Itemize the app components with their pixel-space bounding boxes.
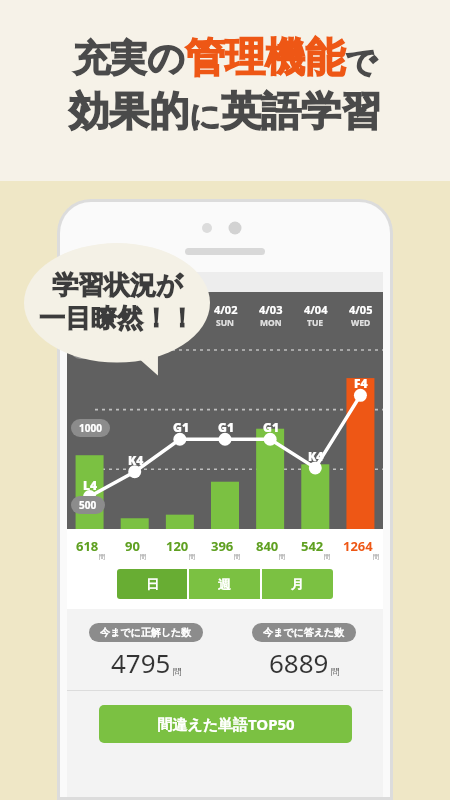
staticText: SUN: [216, 317, 235, 329]
staticText: K4: [128, 452, 144, 468]
staticText: F4: [354, 375, 368, 391]
staticText: 問: [373, 553, 379, 561]
staticText: 問: [331, 666, 340, 677]
staticText: WED: [351, 317, 371, 329]
staticText: 500: [79, 498, 97, 512]
staticText: 396: [211, 537, 234, 555]
staticText: 問: [234, 553, 240, 561]
staticText: 3/30: [78, 302, 102, 317]
staticText: TUE: [307, 317, 324, 329]
staticText: 4/03: [259, 302, 283, 317]
staticText: 充実の: [73, 35, 185, 82]
staticText: 542: [301, 537, 324, 555]
staticText: 一目瞭然！！: [39, 302, 195, 335]
staticText: に: [189, 97, 221, 136]
staticText: 日: [146, 576, 159, 592]
staticText: 問: [324, 553, 330, 561]
staticText: SAT: [173, 317, 188, 329]
button[interactable]: 日: [117, 569, 187, 599]
button[interactable]: 月: [262, 569, 333, 599]
staticText: 効果的: [69, 86, 189, 136]
staticText: G1: [263, 419, 279, 435]
staticText: G1: [173, 419, 189, 435]
staticText: 問: [173, 666, 182, 677]
staticText: 120: [166, 537, 189, 555]
staticText: K4: [308, 448, 324, 464]
staticText: 今までに正解した数: [100, 626, 192, 639]
staticText: THU: [81, 317, 99, 329]
staticText: で: [345, 43, 377, 82]
staticText: 840: [256, 537, 279, 555]
staticText: 学習状況が: [52, 269, 183, 302]
staticText: 4/02: [214, 302, 238, 317]
staticText: 4/01: [169, 302, 193, 317]
staticText: 問: [189, 553, 195, 561]
staticText: 90: [125, 537, 140, 555]
staticText: 問: [99, 553, 105, 561]
button[interactable]: 間違えた単語TOP50: [99, 705, 352, 743]
staticText: 管理機能: [185, 32, 345, 82]
staticText: 6889: [269, 645, 329, 680]
staticText: 1264: [343, 537, 373, 555]
staticText: 月: [291, 576, 304, 592]
staticText: 4/04: [304, 302, 328, 317]
staticText: 英語学習: [221, 86, 381, 136]
staticText: G1: [218, 419, 234, 435]
staticText: 今までに答えた数: [263, 626, 345, 639]
staticText: 4795: [111, 645, 171, 680]
staticText: 週: [218, 576, 231, 592]
staticText: 4/05: [349, 302, 373, 317]
staticText: 問: [279, 553, 285, 561]
button[interactable]: 週: [189, 569, 260, 599]
staticText: 1000: [79, 421, 102, 435]
staticText: FRI: [129, 317, 143, 329]
staticText: 問: [140, 553, 146, 561]
staticText: 間違えた単語TOP50: [157, 714, 295, 734]
staticText: 3/31: [124, 302, 148, 317]
staticText: 618: [76, 537, 99, 555]
staticText: MON: [260, 317, 282, 329]
staticText: L4: [83, 477, 98, 493]
